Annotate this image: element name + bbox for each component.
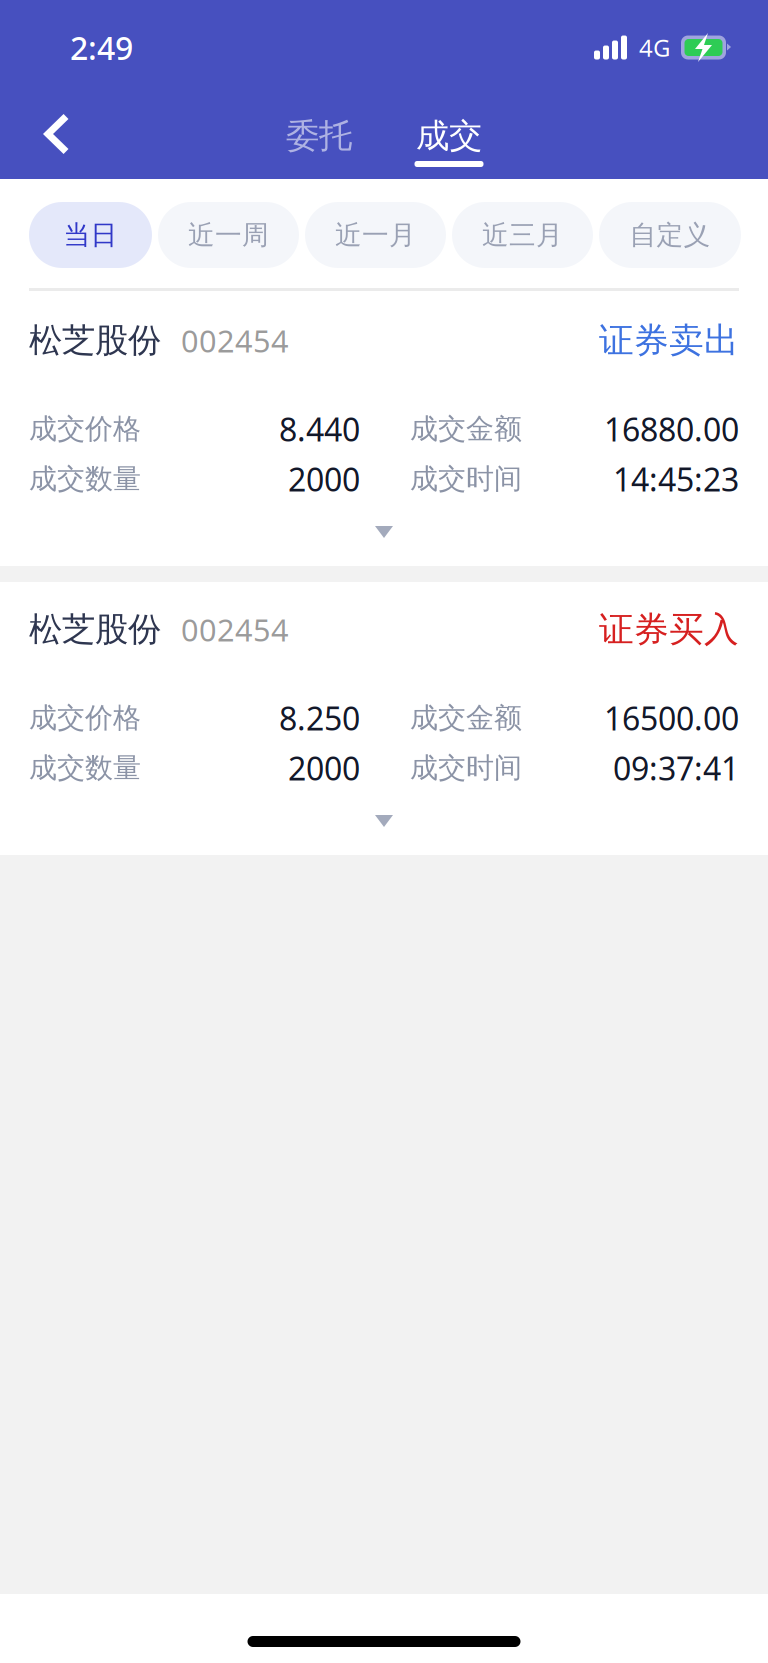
staticText: 委托 [286, 115, 352, 156]
staticText: 成交金额 [410, 701, 522, 735]
staticText: 002454 [181, 609, 289, 650]
staticText: 成交数量 [29, 751, 141, 785]
button[interactable]: 近一月 [305, 202, 446, 268]
button[interactable]: 自定义 [599, 202, 741, 268]
button[interactable]: 近一周 [158, 202, 299, 268]
button[interactable]: 成交 [401, 95, 497, 179]
staticText: 002454 [181, 320, 289, 361]
staticText: 2000 [288, 747, 360, 789]
staticText: 2000 [288, 458, 360, 500]
button[interactable]: 当日 [29, 202, 152, 268]
staticText: 松芝股份 [29, 320, 161, 361]
staticText: 09:37:41 [613, 747, 739, 789]
staticText: 证券卖出 [599, 319, 739, 362]
staticText: 近一月 [335, 219, 416, 251]
button[interactable]: Expand details [0, 781, 768, 827]
button[interactable]: 近三月 [452, 202, 593, 268]
staticText: 16500.00 [604, 697, 739, 739]
staticText: 成交金额 [410, 412, 522, 446]
staticText: 4G [639, 32, 670, 63]
staticText: 成交价格 [29, 412, 141, 446]
staticText: 成交时间 [410, 462, 522, 496]
staticText: 14:45:23 [613, 458, 739, 500]
staticText: 8.250 [279, 697, 360, 739]
staticText: 成交 [416, 115, 482, 156]
staticText: 自定义 [629, 219, 710, 251]
staticText: 证券买入 [599, 608, 739, 651]
staticText: 成交时间 [410, 751, 522, 785]
button[interactable]: Expand details [0, 492, 768, 538]
staticText: 成交价格 [29, 701, 141, 735]
staticText: 近三月 [482, 219, 563, 251]
staticText: 松芝股份 [29, 609, 161, 650]
staticText: 16880.00 [604, 408, 739, 450]
staticText: 当日 [63, 219, 117, 251]
staticText: 近一周 [188, 219, 269, 251]
staticText: 2:49 [70, 26, 133, 69]
button[interactable]: 委托 [271, 95, 367, 179]
staticText: 8.440 [279, 408, 360, 450]
button[interactable]: Back [14, 95, 100, 165]
staticText: 成交数量 [29, 462, 141, 496]
